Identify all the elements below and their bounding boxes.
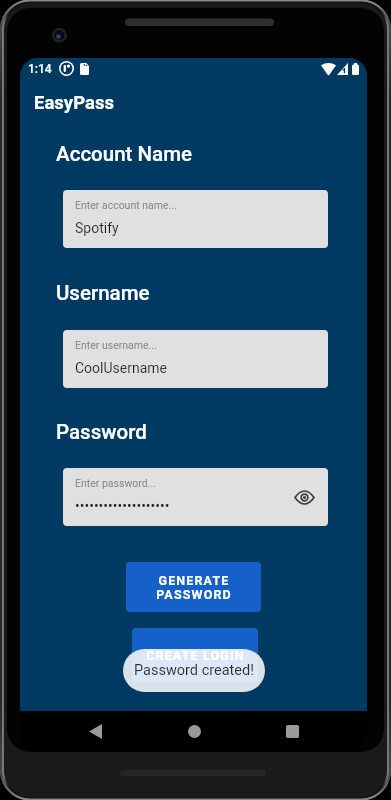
staticText: Username [56, 281, 150, 305]
staticText: Spotify [75, 220, 119, 236]
staticText: GENERATE PASSWORD [156, 573, 232, 602]
button[interactable]: Enter username... [63, 330, 328, 388]
staticText: Enter password... [75, 477, 156, 489]
button[interactable]: Recent apps [268, 711, 316, 752]
staticText: •••••••••••••••••••• [75, 498, 170, 514]
staticText: CREATE LOGIN [146, 648, 245, 663]
button[interactable]: Enter account name... [63, 190, 328, 248]
button[interactable]: Enter password... [63, 468, 328, 526]
button[interactable]: Password created! [123, 649, 265, 692]
button[interactable]: Back [71, 711, 119, 752]
staticText: EasyPass [34, 92, 114, 114]
staticText: Enter username... [75, 339, 157, 351]
staticText: Enter account name... [75, 199, 177, 211]
staticText: Password created! [134, 662, 254, 679]
button[interactable]: CREATE LOGIN [132, 628, 258, 682]
button[interactable]: Home [170, 711, 218, 752]
staticText: 1:14 [28, 62, 52, 76]
staticText: Account Name [56, 142, 193, 166]
button[interactable]: Show password [291, 484, 317, 510]
staticText: CoolUsername [75, 360, 168, 376]
staticText: Password [56, 420, 147, 444]
button[interactable]: GENERATE PASSWORD [126, 562, 261, 612]
